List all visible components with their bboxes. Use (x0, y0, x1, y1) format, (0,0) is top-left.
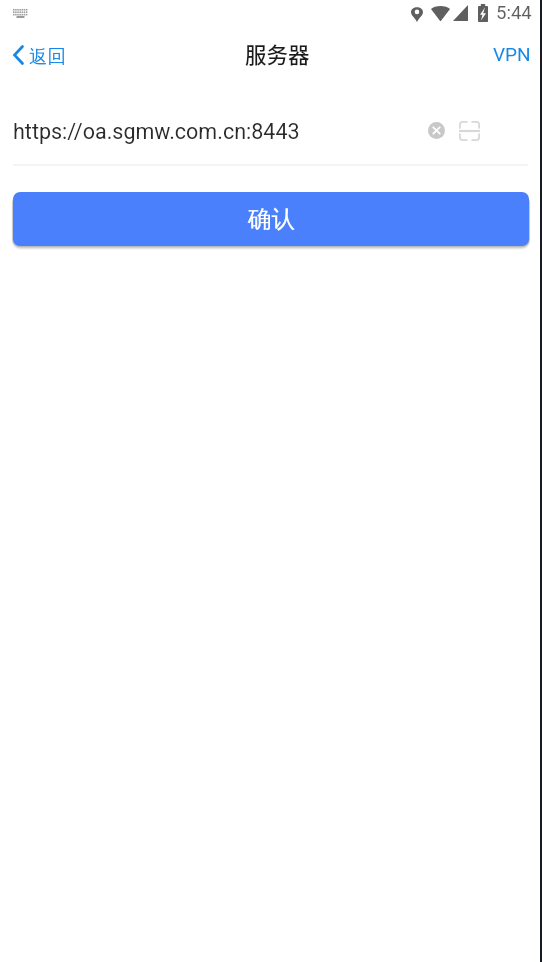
staticText: VPN (493, 43, 531, 65)
button[interactable]: Scan QR code (454, 116, 484, 146)
button[interactable]: Clear (422, 116, 451, 145)
button[interactable]: VPN (477, 33, 542, 75)
button[interactable]: 返回 (0, 35, 80, 74)
staticText: https://oa.sgmw.com.cn:8443 (13, 119, 300, 144)
staticText: 确认 (248, 204, 295, 234)
staticText: 5:44 (496, 2, 532, 24)
staticText: 返回 (29, 45, 66, 68)
staticText: 服务器 (245, 38, 310, 69)
button[interactable]: 确认 (13, 192, 529, 246)
